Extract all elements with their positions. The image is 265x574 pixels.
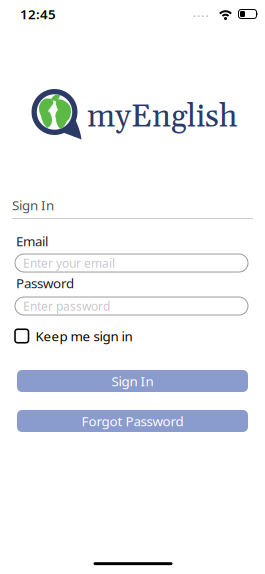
button[interactable]: Sign In <box>17 370 248 392</box>
staticText: Password <box>16 274 74 292</box>
staticText: Enter password <box>23 298 110 314</box>
button[interactable]: Keep me sign in <box>0 327 265 345</box>
button[interactable]: Forgot Password <box>17 410 248 432</box>
staticText: myEnglish <box>87 97 238 137</box>
staticText: Sign In <box>111 372 153 390</box>
staticText: Email <box>16 232 48 250</box>
staticText: Forgot Password <box>81 412 183 430</box>
staticText: Sign In <box>12 196 54 214</box>
staticText: 12:45 <box>20 5 56 23</box>
staticText: Keep me sign in <box>35 327 132 345</box>
staticText: Enter your email <box>23 255 115 271</box>
